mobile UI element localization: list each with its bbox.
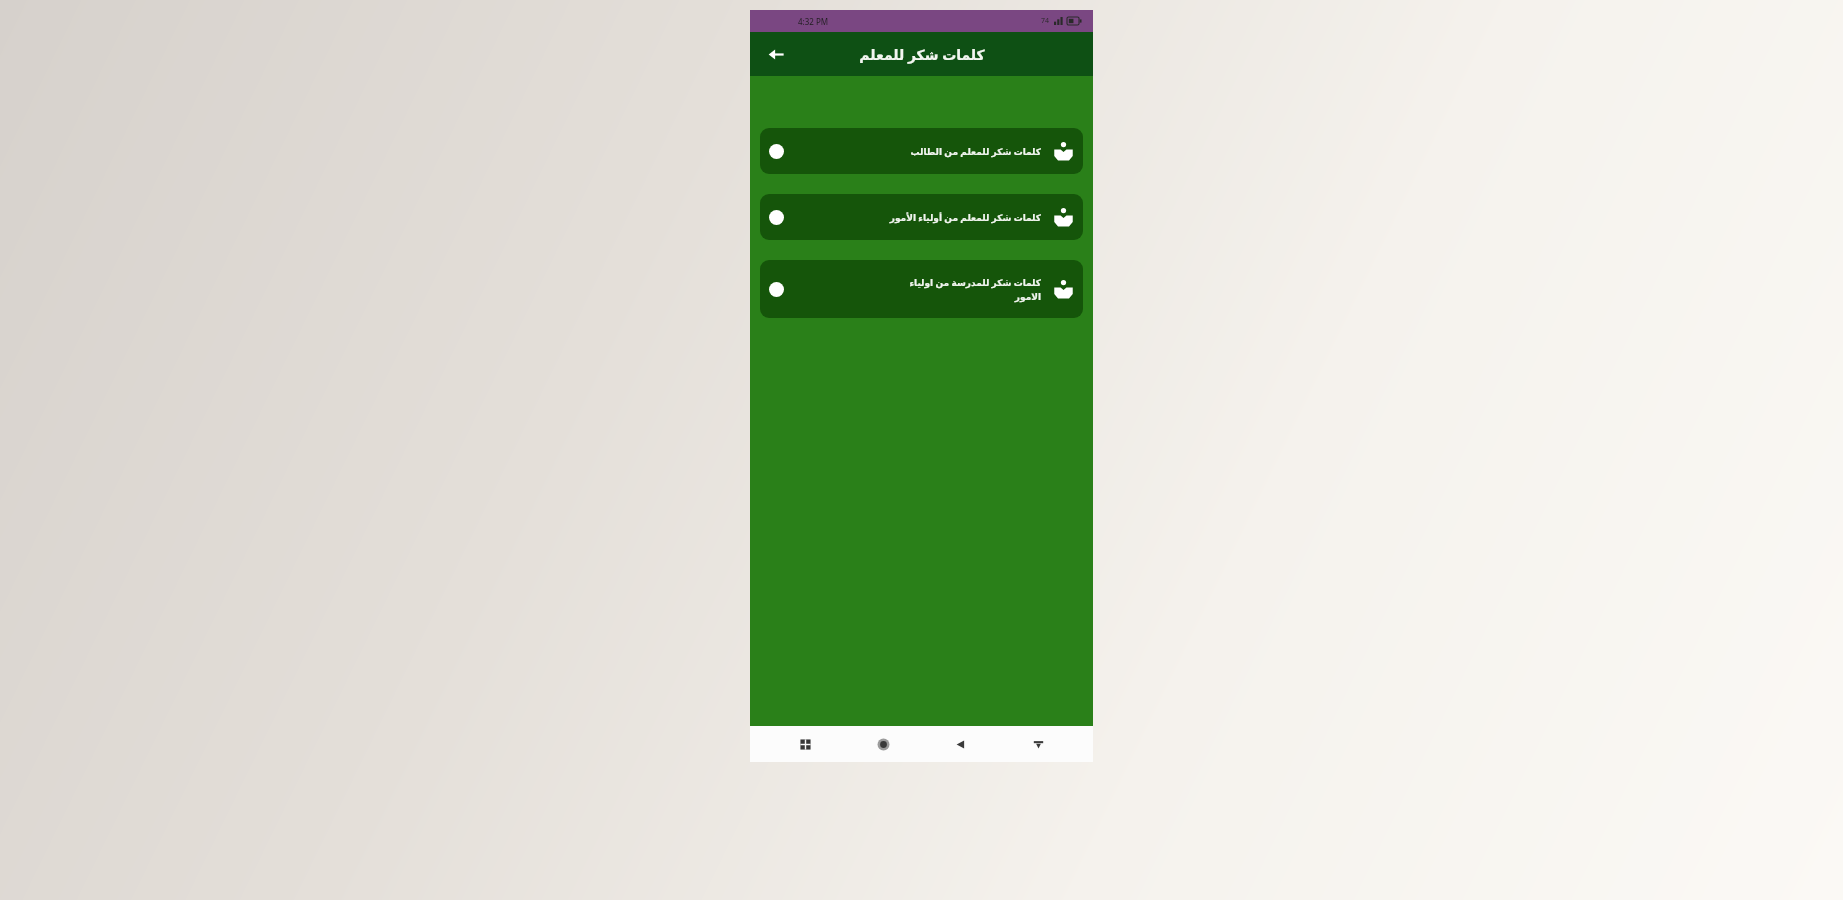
- staticText: 4:32 PM: [798, 16, 829, 27]
- button[interactable]: Back: [937, 727, 983, 761]
- staticText: كلمات شكر للمعلم: [859, 45, 985, 64]
- button[interactable]: Recent apps: [782, 727, 828, 761]
- button[interactable]: كلمات شكر للمدرسة من اولياء: [760, 260, 1083, 318]
- button[interactable]: Back: [760, 38, 792, 70]
- staticText: كلمات شكر للمدرسة من اولياء: [909, 276, 1041, 288]
- staticText: كلمات شكر للمعلم من الطالب: [910, 145, 1041, 157]
- button[interactable]: Home: [860, 727, 906, 761]
- staticText: كلمات شكر للمعلم من أولياء الأمور: [889, 211, 1041, 223]
- button[interactable]: كلمات شكر للمعلم من الطالب: [760, 128, 1083, 174]
- staticText: الامور: [1014, 292, 1041, 302]
- staticText: 74: [1041, 16, 1050, 26]
- button[interactable]: كلمات شكر للمعلم من أولياء الأمور: [760, 194, 1083, 240]
- button[interactable]: Keyboard: [1015, 727, 1061, 761]
